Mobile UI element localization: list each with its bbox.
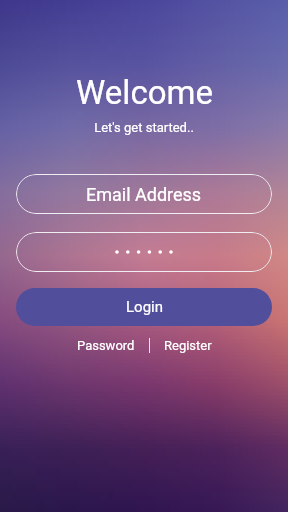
staticText: Welcome [76, 73, 213, 112]
staticText: Email Address [86, 184, 202, 205]
button[interactable]: Login [16, 288, 272, 326]
button[interactable]: Password [72, 335, 140, 356]
staticText: Password [77, 338, 135, 353]
button[interactable]: Email Address [16, 174, 272, 214]
button[interactable] [16, 232, 272, 272]
staticText: Register [164, 338, 212, 353]
staticText: Login [126, 298, 163, 316]
button[interactable]: Register [159, 335, 217, 356]
staticText: Let's get started.. [94, 120, 194, 135]
